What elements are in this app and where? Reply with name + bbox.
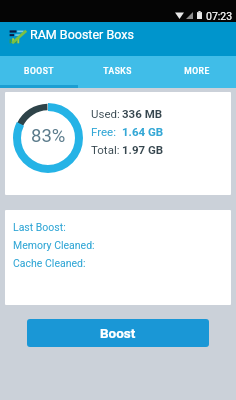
button[interactable]: BOOST xyxy=(0,56,78,88)
staticText: Free: xyxy=(91,125,119,138)
button[interactable]: TASKS xyxy=(78,56,157,88)
staticText: 83% xyxy=(31,125,66,147)
staticText: 1.97 GB xyxy=(122,143,164,156)
staticText: Memory Cleaned: xyxy=(13,239,95,251)
staticText: 336 MB xyxy=(122,107,163,120)
staticText: 07:23 xyxy=(206,10,233,22)
staticText: Used: xyxy=(91,107,123,120)
button[interactable]: MORE xyxy=(157,56,236,88)
staticText: Last Boost: xyxy=(13,221,66,233)
staticText: TASKS xyxy=(103,66,132,76)
staticText: Cache Cleaned: xyxy=(13,257,86,269)
staticText: MORE xyxy=(184,66,210,76)
staticText: Total: xyxy=(91,143,123,156)
staticText: RAM Booster Boxs xyxy=(30,27,134,42)
button[interactable]: Boost xyxy=(27,319,209,347)
staticText: BOOST xyxy=(24,66,54,76)
staticText: 1.64 GB xyxy=(122,125,164,138)
staticText: Boost xyxy=(100,325,136,341)
